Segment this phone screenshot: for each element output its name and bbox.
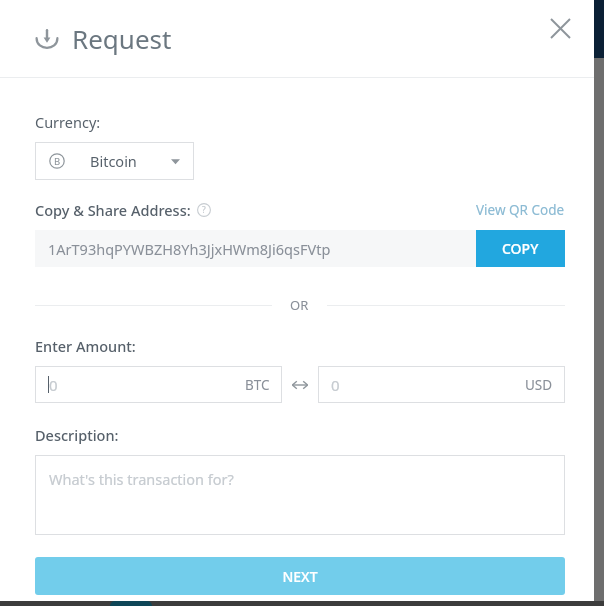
staticText: Currency: <box>35 112 101 132</box>
button[interactable]: View QR Code <box>476 201 565 219</box>
staticText: USD <box>525 376 553 394</box>
staticText: 0 <box>331 375 340 395</box>
staticText: B <box>54 155 61 168</box>
button[interactable]: B <box>35 142 194 180</box>
staticText: Copy & Share Address: <box>35 200 191 220</box>
button[interactable]: Swap currency <box>282 366 318 403</box>
staticText: Enter Amount: <box>35 336 136 356</box>
button[interactable]: 0 <box>318 366 565 403</box>
staticText: Bitcoin <box>90 151 137 171</box>
staticText: COPY <box>502 239 539 258</box>
staticText: What's this transaction for? <box>49 469 234 489</box>
button[interactable]: 1ArT93hqPYWBZH8Yh3JjxHWm8Ji6qsFVtp <box>35 230 476 267</box>
staticText: Description: <box>35 425 119 445</box>
staticText: 0 <box>49 375 58 395</box>
button[interactable]: NEXT <box>35 557 565 595</box>
staticText: OR <box>290 296 309 314</box>
staticText: BTC <box>245 376 270 394</box>
staticText: Request <box>72 21 172 56</box>
staticText: ? <box>202 204 206 216</box>
button[interactable]: 0 <box>35 366 282 403</box>
button[interactable]: What's this transaction for? <box>35 455 565 535</box>
button[interactable]: COPY <box>476 230 565 267</box>
staticText: NEXT <box>282 567 318 586</box>
staticText: View QR Code <box>476 201 565 219</box>
staticText: 1ArT93hqPYWBZH8Yh3JjxHWm8Ji6qsFVtp <box>48 239 331 259</box>
button[interactable]: Close <box>540 8 580 48</box>
button[interactable]: Help <box>197 203 211 217</box>
